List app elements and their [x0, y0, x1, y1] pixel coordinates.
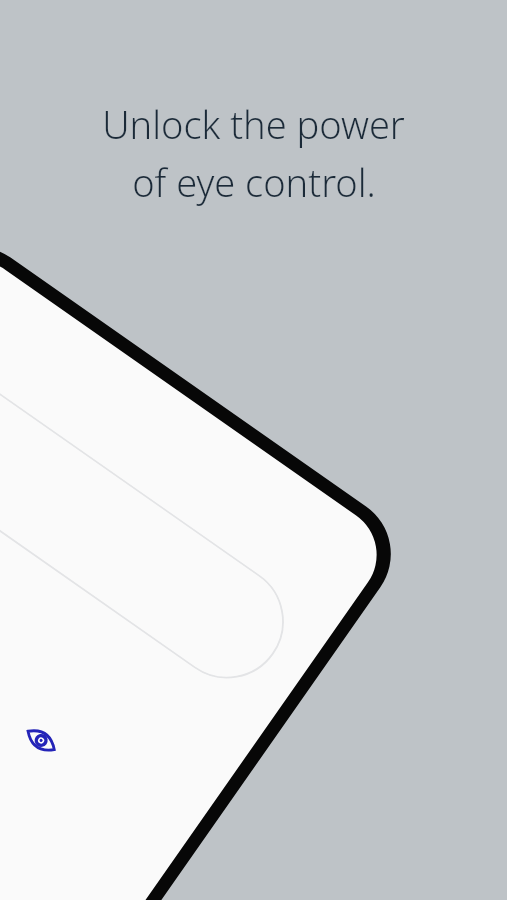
- other: Eye control phone preview: [0, 0, 507, 900]
- button[interactable]: Unlock the power: [0, 98, 507, 208]
- staticText: Unlock the power: [102, 98, 405, 150]
- staticText: of eye control.: [132, 156, 376, 208]
